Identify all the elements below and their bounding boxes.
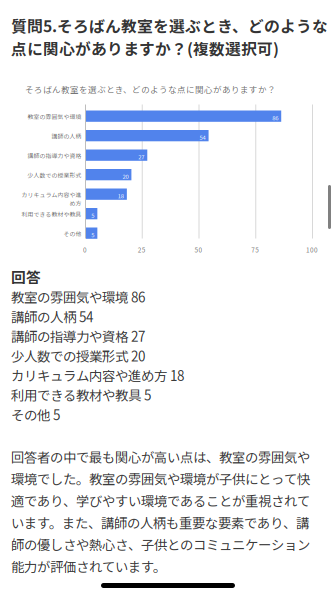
staticText: 講師の人柄 — [51, 132, 81, 140]
staticText: 86 — [272, 113, 278, 122]
staticText: 75 — [251, 245, 259, 254]
staticText: カリキュラム内容や進め方 18 — [11, 365, 184, 385]
staticText: 講師の指導力や資格 — [27, 151, 81, 160]
staticText: その他 5 — [11, 405, 60, 424]
staticText: 少人数での授業形式 — [27, 171, 81, 179]
staticText: そろばん教室を選ぶとき、どのような点に関心がありますか？ — [25, 83, 276, 95]
staticText: 0 — [83, 245, 87, 254]
staticText: 講師の指導力や資格 27 — [11, 326, 145, 346]
staticText: 100 — [306, 245, 318, 254]
staticText: 少人数での授業形式 20 — [11, 346, 145, 365]
staticText: 18 — [118, 191, 124, 200]
staticText: 25 — [138, 245, 146, 254]
staticText: 50 — [194, 245, 202, 254]
staticText: 質問5.そろばん教室を選ぶとき、どのような点に関心がありますか？(複数選択可) — [11, 14, 328, 60]
staticText: 講師の人柄 54 — [11, 307, 93, 326]
staticText: カリキュラム内容や進め方 — [21, 190, 81, 207]
staticText: 利用できる教材や教具 5 — [11, 385, 151, 404]
staticText: 回答 — [11, 266, 41, 287]
staticText: 利用できる教材や教具 — [21, 210, 81, 218]
staticText: 54 — [200, 133, 206, 141]
staticText: 教室の雰囲気や環境 — [27, 112, 81, 121]
staticText: その他 — [63, 229, 81, 238]
staticText: 回答者の中で最も関心が高い点は、教室の雰囲気や環境でした。教室の雰囲気や環境が子… — [11, 447, 310, 576]
staticText: 27 — [138, 152, 144, 161]
staticText: 教室の雰囲気や環境 86 — [11, 287, 145, 306]
staticText: 5 — [91, 230, 94, 239]
staticText: 20 — [122, 172, 128, 180]
staticText: 5 — [91, 211, 94, 219]
